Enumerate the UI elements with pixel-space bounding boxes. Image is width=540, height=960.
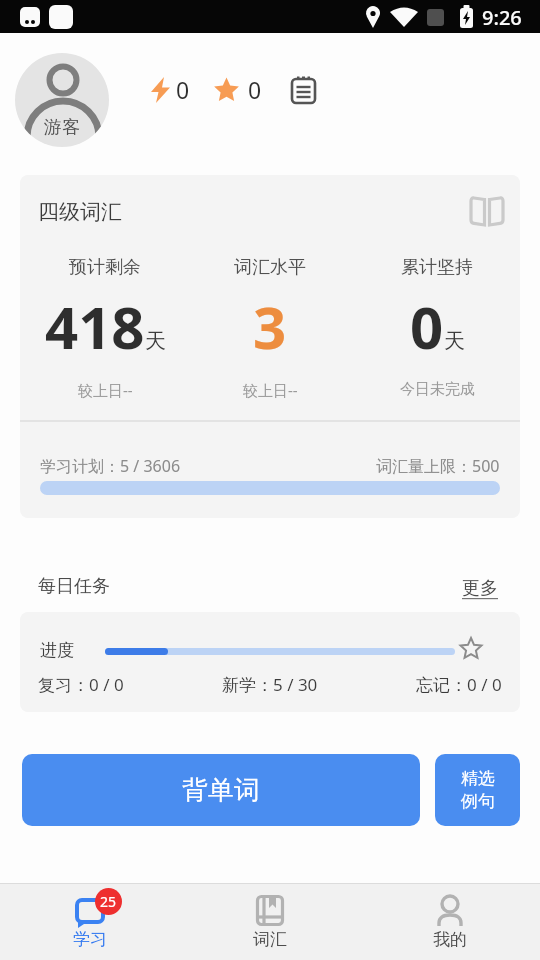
button[interactable]: 我的 [400,885,500,960]
staticText: 背单词 [182,774,260,807]
button[interactable]: 词汇 [220,885,320,960]
staticText: 我的 [433,929,467,950]
staticText: 0 [248,74,262,105]
staticText: 精选 例句 [461,768,495,812]
staticText: 学习计划：5 / 3606 [40,455,181,477]
button[interactable]: 背单词 [22,754,420,826]
staticText: 25 [100,892,117,911]
staticText: 天 [145,328,165,354]
button[interactable]: 25 [40,885,140,960]
staticText: 词汇水平 [234,256,306,279]
staticText: 四级词汇 [38,199,122,225]
staticText: 预计剩余 [69,256,141,279]
staticText: 词汇 [253,929,287,950]
button[interactable]: 精选 例句 [435,754,520,826]
staticText: 复习：0 / 0 [38,673,124,696]
staticText: 新学：5 / 30 [222,673,318,696]
staticText: 3 [253,287,287,366]
staticText: 较上日-- [78,380,133,400]
button[interactable]: 更多 [450,573,510,603]
staticText: 累计坚持 [401,256,473,279]
staticText: 天 [444,328,465,354]
staticText: 每日任务 [38,575,110,598]
button[interactable] [470,195,504,227]
staticText: 较上日-- [243,380,298,400]
staticText: 今日未完成 [400,380,475,399]
button[interactable]: 游客 [15,53,109,147]
staticText: 词汇量上限：500 [376,455,500,477]
staticText: 0 [410,287,444,366]
staticText: 忘记：0 / 0 [416,673,502,696]
staticText: 更多 [462,577,498,600]
button[interactable] [291,76,316,104]
staticText: 0 [176,74,190,105]
staticText: 游客 [44,116,80,139]
staticText: 进度 [40,640,74,661]
staticText: 9:26 [482,4,522,31]
staticText: 学习 [73,929,107,950]
staticText: 418 [45,287,145,366]
